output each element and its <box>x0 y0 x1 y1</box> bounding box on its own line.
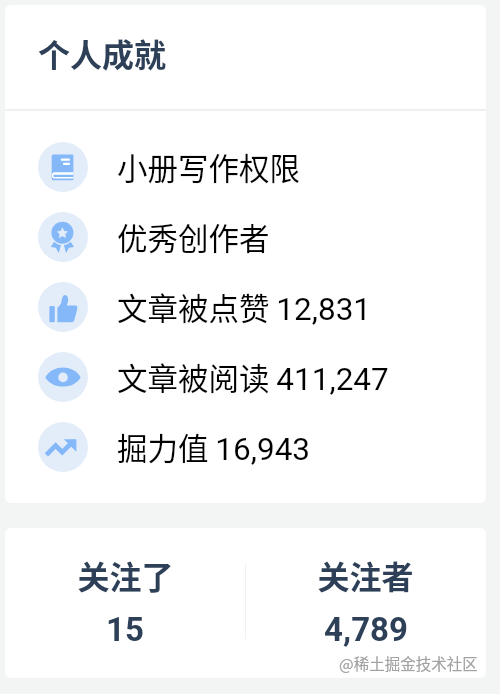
staticText: 关注者 <box>317 552 414 598</box>
staticText: 关注了 <box>77 552 174 598</box>
other: Article likes <box>38 282 88 332</box>
staticText: @稀土掘金技术社区 <box>339 652 478 674</box>
other: Booklet writing permission <box>38 142 88 192</box>
button[interactable]: 关注了 <box>5 528 245 678</box>
staticText: 文章被点赞 12,831 <box>117 285 372 329</box>
button[interactable]: Booklet writing permission <box>5 132 486 202</box>
other: Article reads <box>38 352 88 402</box>
staticText: 4,789 <box>324 610 408 649</box>
button[interactable]: Power value <box>5 412 486 482</box>
other: Outstanding creator <box>38 212 88 262</box>
button[interactable]: 关注者 <box>245 528 486 678</box>
button[interactable]: Article likes <box>5 272 486 342</box>
staticText: 掘力值 16,943 <box>117 425 311 469</box>
staticText: 文章被阅读 411,247 <box>117 355 389 399</box>
staticText: 小册写作权限 <box>117 145 300 189</box>
button[interactable]: Outstanding creator <box>5 202 486 272</box>
staticText: 优秀创作者 <box>117 215 270 259</box>
other: Power value <box>38 422 88 472</box>
staticText: 15 <box>106 610 144 649</box>
button[interactable]: Article reads <box>5 342 486 412</box>
staticText: 个人成就 <box>38 30 167 76</box>
